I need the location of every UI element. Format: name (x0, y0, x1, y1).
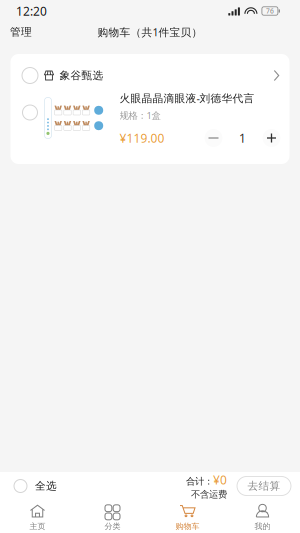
button[interactable]: 我的 (225, 497, 300, 533)
button[interactable]: 管理 (0, 19, 42, 44)
staticText: 分类 (104, 521, 120, 531)
staticText: 1 (239, 130, 246, 146)
staticText: 规格：1盒 (119, 109, 160, 122)
button[interactable]: 购物车 (150, 497, 225, 533)
staticText: 去结算 (247, 479, 280, 492)
button[interactable]: 去结算 (237, 476, 291, 495)
staticText: 购物车（共1件宝贝） (97, 25, 202, 39)
staticText: ¥119.00 (119, 130, 164, 146)
staticText: 全选 (35, 479, 57, 492)
button[interactable]: 主页 (0, 497, 75, 533)
staticText: 购物车 (175, 521, 199, 531)
staticText: 火眼晶晶滴眼液-刘德华代言 (119, 91, 254, 105)
button[interactable]: 全选 (0, 472, 67, 500)
staticText: 合计： (186, 476, 213, 487)
staticText: 管理 (10, 25, 32, 38)
button[interactable]: 分类 (75, 497, 150, 533)
staticText: 主页 (29, 521, 45, 531)
staticText: 76 (266, 7, 274, 15)
staticText: 不含运费 (191, 489, 227, 500)
staticText: 我的 (254, 521, 270, 531)
button[interactable]: Increase quantity (262, 129, 280, 147)
staticText: ¥0 (213, 472, 227, 488)
button[interactable]: 象谷甄选 (10, 54, 289, 91)
button[interactable]: Decrease quantity (204, 129, 222, 147)
staticText: 象谷甄选 (59, 69, 103, 82)
staticText: 12:20 (16, 3, 47, 19)
